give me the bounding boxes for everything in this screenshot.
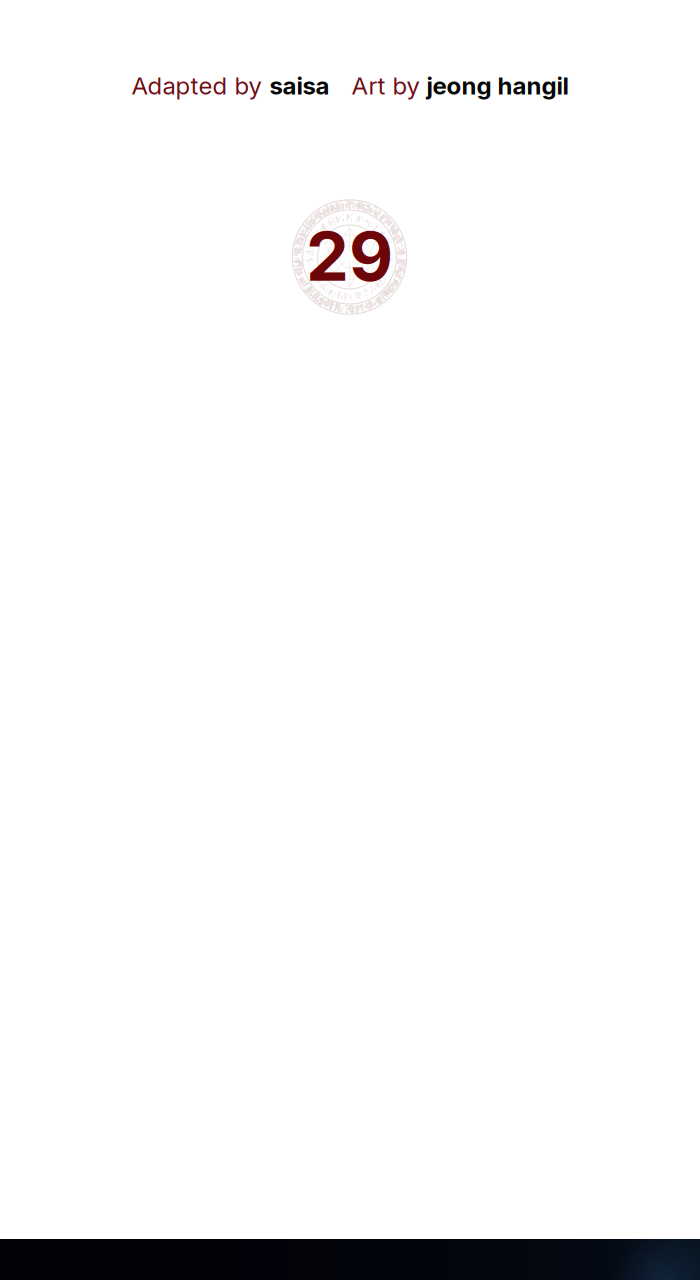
staticText: jeong hangil <box>426 71 568 100</box>
staticText: Adapted by <box>131 71 261 100</box>
staticText: 29 <box>306 215 393 297</box>
staticText: Art by <box>351 71 419 100</box>
staticText: saisa <box>269 71 329 100</box>
